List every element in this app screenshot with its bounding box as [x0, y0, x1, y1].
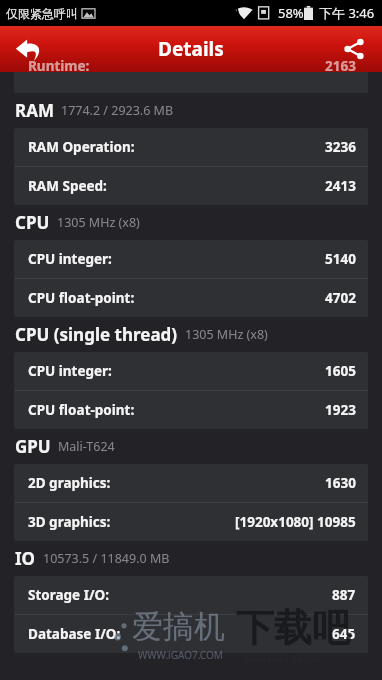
staticText: 1305 MHz (x8) — [185, 326, 268, 343]
staticText: 2163 — [325, 57, 356, 75]
staticText: IO — [15, 547, 36, 570]
staticText: www.xiazaiba.com — [244, 652, 323, 664]
staticText: WWW.iGAO7.COM — [138, 648, 223, 662]
staticText: 下载吧 — [236, 604, 350, 652]
button[interactable]: RAM Operation: — [14, 128, 368, 166]
staticText: 1630 — [325, 474, 356, 492]
button[interactable]: Storage I/O: — [14, 576, 368, 614]
staticText: RAM Operation: — [28, 138, 135, 156]
staticText: CPU float-point: — [28, 401, 135, 419]
staticText: CPU integer: — [28, 250, 112, 268]
staticText: 2D graphics: — [28, 474, 111, 492]
button[interactable]: CPU float-point: — [14, 391, 368, 429]
staticText: 4702 — [325, 289, 356, 307]
staticText: Storage I/O: — [28, 586, 110, 604]
staticText: 58% — [278, 4, 304, 22]
staticText: 下午 3:46 — [319, 4, 375, 22]
button[interactable]: Share — [326, 26, 382, 72]
staticText: 5140 — [325, 250, 356, 268]
staticText: 3236 — [325, 138, 356, 156]
staticText: Database I/O: — [28, 625, 121, 643]
staticText: 爱搞机 — [132, 607, 225, 646]
staticText: 3D graphics: — [28, 513, 111, 531]
staticText: 2413 — [325, 177, 356, 195]
staticText: CPU (single thread) — [15, 323, 178, 346]
button[interactable]: RAM Speed: — [14, 167, 368, 205]
staticText: 1305 MHz (x8) — [57, 214, 140, 231]
staticText: GPU — [15, 435, 51, 458]
staticText: CPU float-point: — [28, 289, 135, 307]
staticText: 1923 — [325, 401, 356, 419]
staticText: Mali-T624 — [58, 438, 115, 455]
staticText: 1605 — [325, 362, 356, 380]
staticText: CPU — [15, 211, 50, 234]
button[interactable]: Back — [0, 26, 56, 72]
button[interactable]: 2D graphics: — [14, 464, 368, 502]
button[interactable]: Database I/O: — [14, 615, 368, 653]
staticText: RAM — [15, 99, 54, 122]
staticText: [1920x1080] 10985 — [235, 513, 356, 531]
button[interactable]: CPU float-point: — [14, 279, 368, 317]
button[interactable]: CPU integer: — [14, 240, 368, 278]
staticText: Details — [158, 36, 224, 62]
staticText: Runtime: — [28, 57, 90, 75]
staticText: CPU integer: — [28, 362, 112, 380]
button[interactable]: CPU integer: — [14, 352, 368, 390]
staticText: 仅限紧急呼叫 — [6, 6, 78, 21]
staticText: 10573.5 / 11849.0 MB — [43, 550, 170, 567]
staticText: RAM Speed: — [28, 177, 107, 195]
staticText: 1774.2 / 2923.6 MB — [61, 102, 174, 119]
staticText: 645 — [332, 625, 356, 643]
staticText: 887 — [332, 586, 356, 604]
button[interactable]: 3D graphics: — [14, 503, 368, 541]
